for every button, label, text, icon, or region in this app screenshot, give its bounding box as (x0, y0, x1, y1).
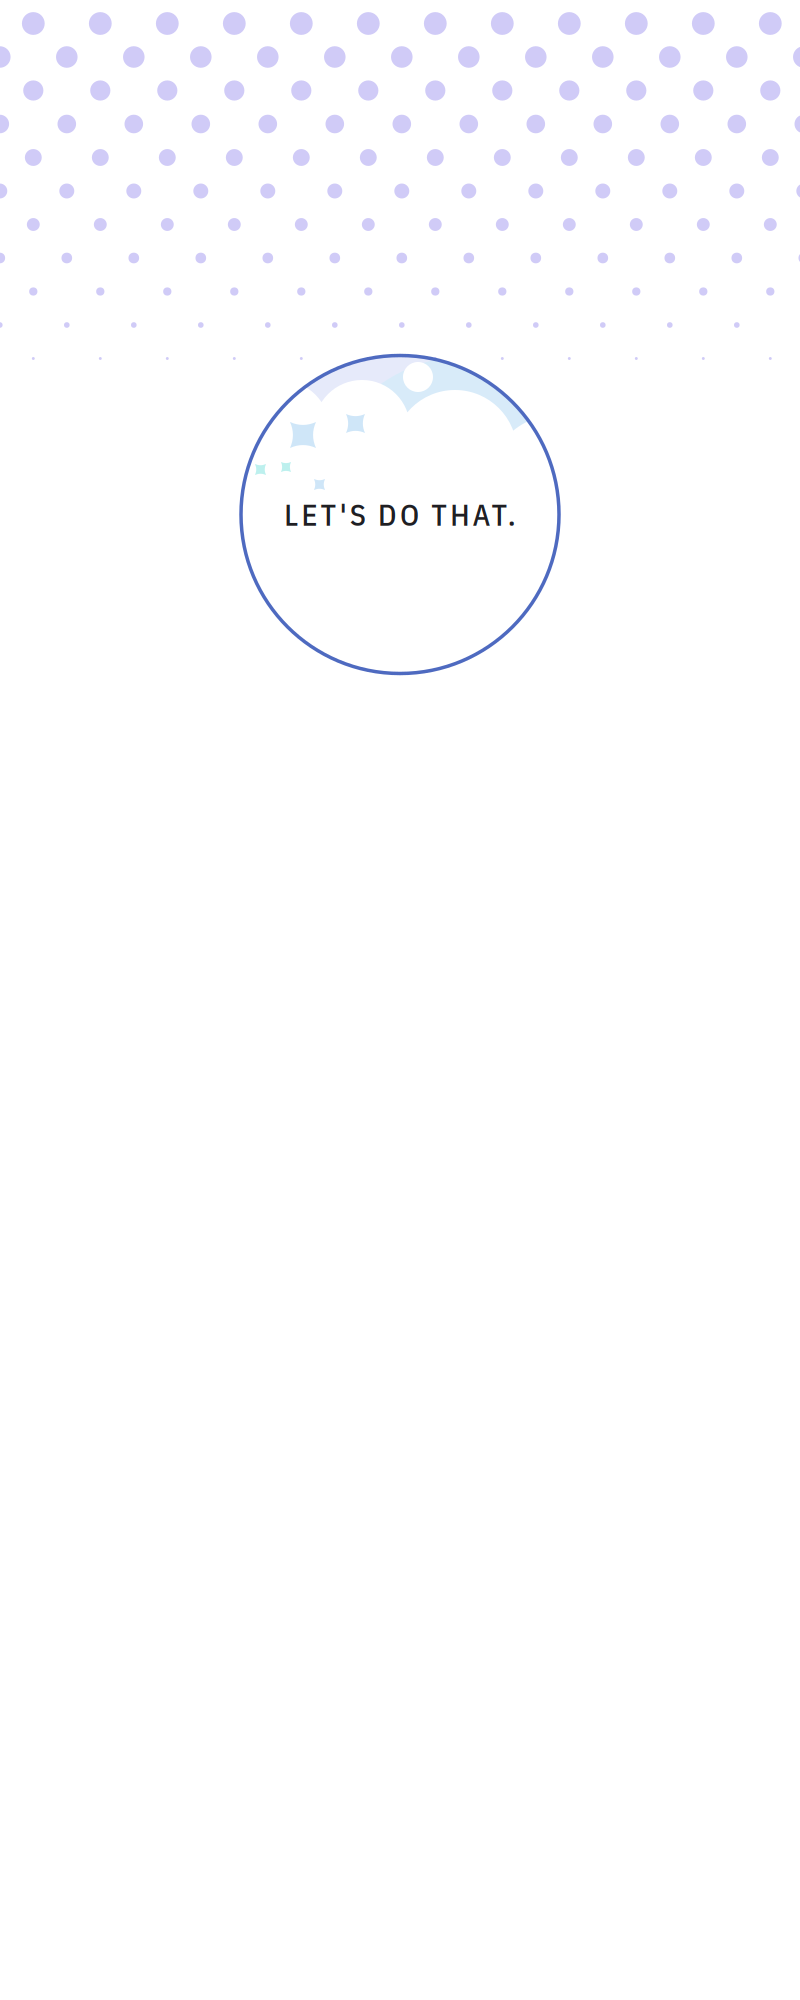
button[interactable]: LET'S DO THAT. (241, 355, 559, 673)
staticText: LET'S DO THAT. (284, 495, 516, 534)
